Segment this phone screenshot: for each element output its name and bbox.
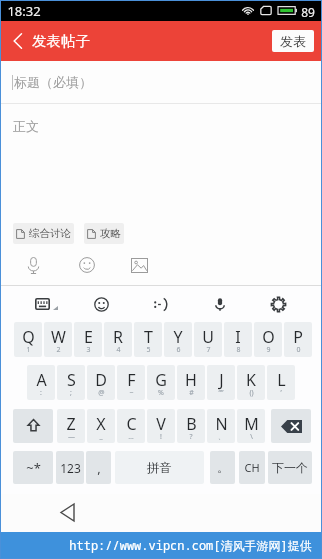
staticText: 89 [301, 4, 315, 20]
staticText: C [126, 413, 137, 435]
button[interactable]: Shift [13, 409, 53, 443]
button[interactable]: , [86, 451, 111, 484]
button[interactable]: D [87, 365, 115, 400]
button[interactable]: I [224, 322, 252, 357]
button[interactable]: T [134, 322, 162, 357]
button[interactable]: K [237, 365, 265, 400]
button[interactable]: F [117, 365, 145, 400]
button[interactable]: Keyboard layout [28, 288, 57, 318]
staticText: U [202, 326, 214, 348]
button[interactable]: 综合讨论 [13, 223, 74, 244]
staticText: H [185, 369, 197, 391]
staticText: 8 [236, 345, 241, 355]
staticText: 18:32 [7, 2, 41, 20]
button[interactable]: Settings [264, 288, 293, 318]
button[interactable]: Emoji [87, 288, 116, 318]
staticText: 7 [206, 345, 211, 355]
staticText: 发表 [280, 33, 306, 49]
staticText: % [158, 388, 164, 398]
button[interactable]: Back [52, 497, 82, 527]
button[interactable]: R [104, 322, 132, 357]
staticText: N [215, 413, 228, 435]
staticText: — [68, 432, 75, 442]
staticText: 发表帖子 [32, 32, 90, 50]
staticText: 拼音 [147, 460, 172, 476]
button[interactable]: Back [5, 24, 31, 58]
button[interactable]: Z [57, 409, 85, 443]
staticText: ~* [26, 459, 41, 477]
staticText: ’ [280, 388, 282, 398]
staticText: ? [189, 432, 193, 442]
staticText: … [128, 432, 134, 442]
staticText: () [249, 388, 254, 398]
staticText: \ [250, 432, 253, 442]
button[interactable]: W [44, 322, 72, 357]
staticText: 攻略 [100, 227, 121, 240]
button[interactable]: L [267, 365, 295, 400]
staticText: Z [66, 413, 76, 435]
staticText: W [51, 326, 66, 348]
button[interactable]: CH [239, 451, 265, 484]
staticText: Y [173, 326, 183, 348]
button[interactable]: J [207, 365, 235, 400]
staticText: F [127, 369, 136, 391]
staticText: J [219, 369, 224, 391]
staticText: 3 [86, 345, 91, 355]
button[interactable]: Emoji [74, 250, 100, 280]
staticText: @ [98, 388, 105, 398]
button[interactable]: 发表 [272, 30, 314, 52]
button[interactable]: N [207, 409, 235, 443]
staticText: E [84, 326, 93, 348]
staticText: 4 [116, 345, 121, 355]
button[interactable]: 123 [56, 451, 84, 484]
staticText: R [113, 326, 123, 348]
button[interactable]: 正文 [0, 104, 322, 223]
staticText: 1 [26, 345, 31, 355]
button[interactable]: 。 [210, 451, 235, 484]
staticText: I [235, 326, 241, 348]
staticText: ~ [129, 388, 134, 398]
button[interactable]: V [147, 409, 175, 443]
button[interactable]: E [74, 322, 102, 357]
button[interactable]: B [177, 409, 205, 443]
button[interactable]: Emoticons [146, 288, 174, 318]
staticText: 综合讨论 [29, 227, 71, 240]
button[interactable]: 下一个 [268, 451, 312, 484]
staticText: 标题（必填） [14, 74, 92, 90]
button[interactable]: 拼音 [115, 451, 204, 484]
staticText: L [277, 369, 286, 391]
button[interactable]: S [57, 365, 85, 400]
staticText: D [95, 369, 107, 391]
staticText: 0 [296, 345, 301, 355]
button[interactable]: Voice input [20, 250, 46, 280]
staticText: G [155, 369, 167, 391]
staticText: 6 [176, 345, 181, 355]
staticText: B [186, 413, 197, 435]
staticText: O [262, 326, 275, 348]
staticText: ! [160, 432, 162, 442]
button[interactable]: X [87, 409, 115, 443]
button[interactable]: Q [14, 322, 42, 357]
button[interactable]: Voice input [206, 288, 234, 318]
staticText: , [97, 459, 101, 477]
button[interactable]: Add image [126, 250, 152, 280]
button[interactable]: G [147, 365, 175, 400]
button[interactable]: ~* [13, 451, 53, 484]
button[interactable]: M [237, 409, 265, 443]
staticText: : [40, 388, 42, 398]
button[interactable]: U [194, 322, 222, 357]
staticText: CH [244, 460, 260, 475]
button[interactable]: 攻略 [84, 223, 124, 244]
button[interactable]: P [284, 322, 312, 357]
button[interactable]: A [27, 365, 55, 400]
staticText: 、 [218, 432, 225, 441]
staticText: A [36, 369, 47, 391]
button[interactable]: O [254, 322, 282, 357]
staticText: M [244, 413, 259, 435]
button[interactable]: Y [164, 322, 192, 357]
button[interactable]: C [117, 409, 145, 443]
staticText: 下一个 [272, 460, 308, 475]
button[interactable]: H [177, 365, 205, 400]
button[interactable]: 标题（必填） [0, 61, 322, 103]
button[interactable]: Backspace [271, 409, 311, 443]
